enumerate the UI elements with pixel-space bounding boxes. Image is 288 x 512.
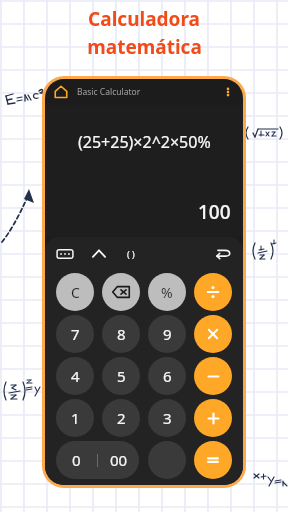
button[interactable]: ( ) <box>122 245 140 263</box>
button[interactable]: 00 <box>98 441 139 479</box>
staticText: 100 <box>198 199 231 225</box>
staticText: C <box>71 283 80 302</box>
other: Divide <box>206 285 220 299</box>
staticText: Basic Calculator <box>77 86 141 98</box>
staticText: (25+25)×2^2×50% <box>78 131 211 153</box>
staticText: 3 <box>163 408 172 428</box>
button[interactable]: Backspace <box>102 273 140 311</box>
button[interactable]: C <box>56 273 94 311</box>
button[interactable]: More options <box>221 85 235 99</box>
button[interactable]: Decimal point <box>148 441 186 479</box>
button[interactable]: Divide <box>194 273 232 311</box>
staticText: 7 <box>71 324 80 344</box>
other: Minus <box>207 370 220 383</box>
button[interactable]: Home <box>53 84 69 100</box>
button[interactable]: Multiply <box>194 315 232 353</box>
other: Plus <box>207 412 220 425</box>
button[interactable]: Undo <box>214 245 232 263</box>
other: Multiply <box>207 328 219 340</box>
staticText: 2 <box>117 408 126 428</box>
button[interactable] <box>194 441 232 479</box>
button[interactable]: % <box>148 273 186 311</box>
staticText: 5 <box>117 366 126 386</box>
staticText: matemática <box>87 34 202 60</box>
button[interactable]: Minus <box>194 357 232 395</box>
button[interactable]: 2 <box>102 399 140 437</box>
button[interactable]: 9 <box>148 315 186 353</box>
staticText: 9 <box>163 324 172 344</box>
other: Backspace <box>112 283 130 301</box>
button[interactable]: Plus <box>194 399 232 437</box>
staticText: % <box>161 283 173 302</box>
button[interactable]: 5 <box>102 357 140 395</box>
button[interactable]: 1 <box>56 399 94 437</box>
button[interactable]: 8 <box>102 315 140 353</box>
staticText: ( ) <box>127 248 135 260</box>
staticText: Calculadora <box>88 6 200 32</box>
staticText: 0 <box>72 450 81 470</box>
staticText: 6 <box>163 366 172 386</box>
button[interactable]: Power <box>90 245 108 263</box>
staticText: 00 <box>110 450 128 470</box>
staticText: 8 <box>117 324 126 344</box>
staticText: 4 <box>71 366 80 386</box>
button[interactable]: Keyboard <box>56 245 74 263</box>
button[interactable]: 4 <box>56 357 94 395</box>
button[interactable]: 3 <box>148 399 186 437</box>
button[interactable]: 0 <box>56 441 97 479</box>
button[interactable]: 6 <box>148 357 186 395</box>
staticText: 1 <box>71 408 80 428</box>
button[interactable]: 7 <box>56 315 94 353</box>
